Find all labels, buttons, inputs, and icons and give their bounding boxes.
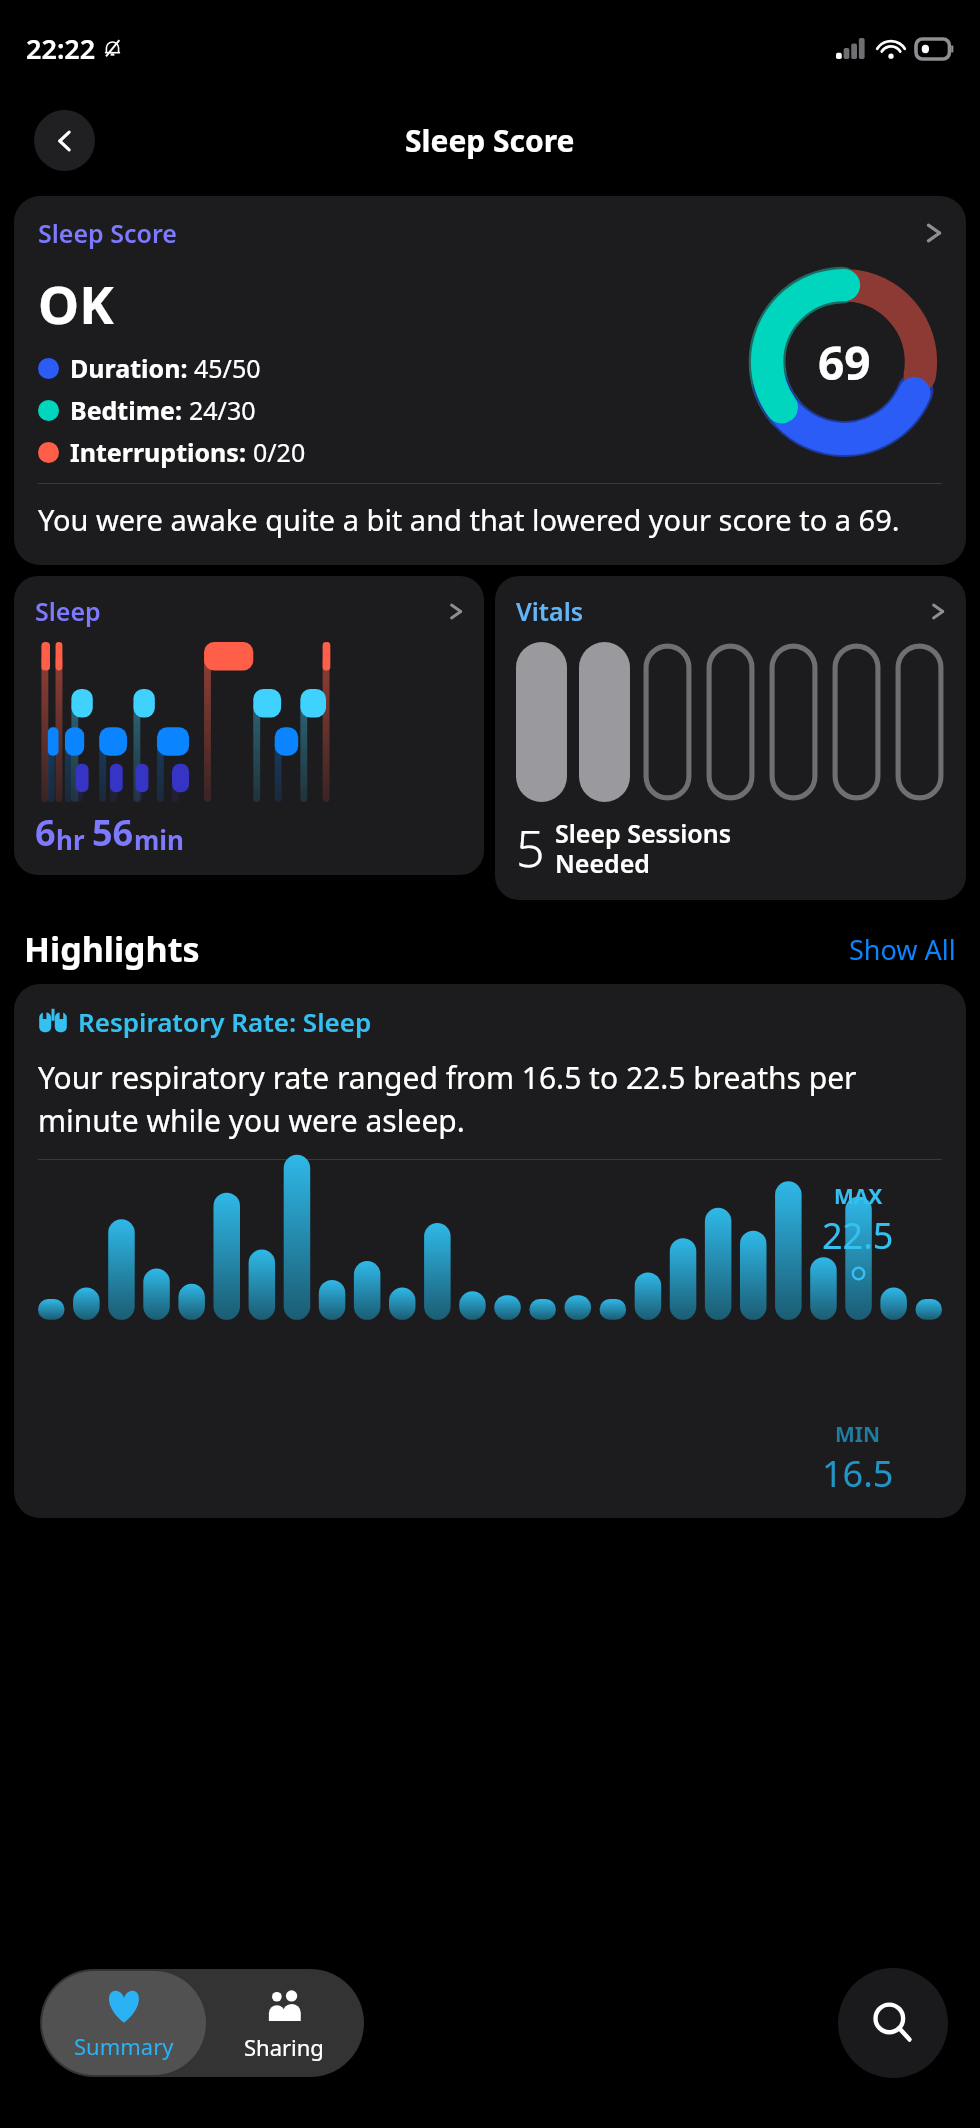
staticText: Interruptions: — [70, 435, 253, 469]
staticText: 0/20 — [253, 435, 306, 469]
button[interactable]: Sharing — [206, 1971, 362, 2075]
staticText: 24/30 — [189, 393, 256, 427]
button[interactable]: Search — [838, 1968, 948, 2078]
staticText: Bedtime: — [70, 393, 189, 427]
staticText: Sharing — [244, 2032, 324, 2062]
staticText: 22.5 — [822, 1211, 894, 1260]
staticText: Summary — [74, 2031, 174, 2061]
staticText: You were awake quite a bit and that lowe… — [38, 500, 942, 539]
staticText: min — [134, 822, 185, 857]
staticText: 6 — [35, 808, 56, 857]
staticText: 16.5 — [822, 1449, 894, 1498]
staticText: Highlights — [24, 926, 849, 972]
staticText: Sleep Sessions Needed — [555, 816, 732, 880]
staticText: 45/50 — [194, 351, 261, 385]
staticText: 69 — [818, 331, 871, 394]
staticText: MAX — [834, 1182, 883, 1211]
button[interactable]: Vitals — [495, 576, 966, 900]
button[interactable]: Back — [34, 110, 95, 171]
staticText: Sleep Score — [405, 120, 575, 161]
button[interactable]: Summary — [42, 1971, 206, 2075]
staticText: Show All — [849, 931, 956, 968]
button[interactable]: Respiratory Rate: Sleep — [14, 984, 966, 1518]
staticText: Sleep — [35, 594, 449, 628]
button[interactable]: Sleep — [14, 576, 484, 875]
staticText: Duration: — [70, 351, 194, 385]
staticText: 56 — [92, 808, 134, 857]
staticText: 5 — [516, 814, 545, 882]
staticText: Vitals — [516, 594, 931, 628]
staticText: Respiratory Rate: Sleep — [78, 1004, 372, 1039]
button[interactable]: Show All — [849, 931, 956, 968]
staticText: Your respiratory rate ranged from 16.5 t… — [38, 1057, 942, 1141]
staticText: hr — [56, 822, 92, 857]
button[interactable]: Sleep Score — [14, 196, 966, 565]
staticText: MIN — [835, 1420, 881, 1449]
staticText: OK — [38, 268, 114, 339]
staticText: Sleep Score — [38, 216, 926, 250]
staticText: 22:22 — [26, 30, 96, 67]
